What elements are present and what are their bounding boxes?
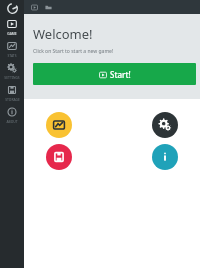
button[interactable]: STORAGE bbox=[0, 82, 24, 104]
staticText: Welcome! bbox=[33, 25, 93, 43]
staticText: GAME bbox=[7, 31, 17, 35]
button[interactable]: STATS bbox=[0, 38, 24, 60]
button[interactable]: Save game bbox=[46, 144, 72, 170]
staticText: STATS bbox=[7, 53, 17, 57]
button[interactable]: Run bbox=[28, 1, 40, 13]
button[interactable]: Start! bbox=[33, 63, 196, 85]
button[interactable]: Settings bbox=[152, 112, 178, 138]
button[interactable]: About bbox=[152, 144, 178, 170]
staticText: ABOUT bbox=[6, 119, 18, 123]
staticText: SETTINGS bbox=[4, 75, 20, 79]
button[interactable]: Open file bbox=[42, 1, 54, 13]
button[interactable]: ABOUT bbox=[0, 104, 24, 126]
button[interactable]: App logo bbox=[0, 0, 24, 16]
button[interactable]: Statistics bbox=[46, 112, 72, 138]
button[interactable]: GAME bbox=[0, 16, 24, 38]
staticText: Click on Start to start a new game! bbox=[33, 48, 114, 55]
staticText: STORAGE bbox=[5, 97, 20, 101]
button[interactable]: SETTINGS bbox=[0, 60, 24, 82]
staticText: Start! bbox=[110, 69, 131, 80]
